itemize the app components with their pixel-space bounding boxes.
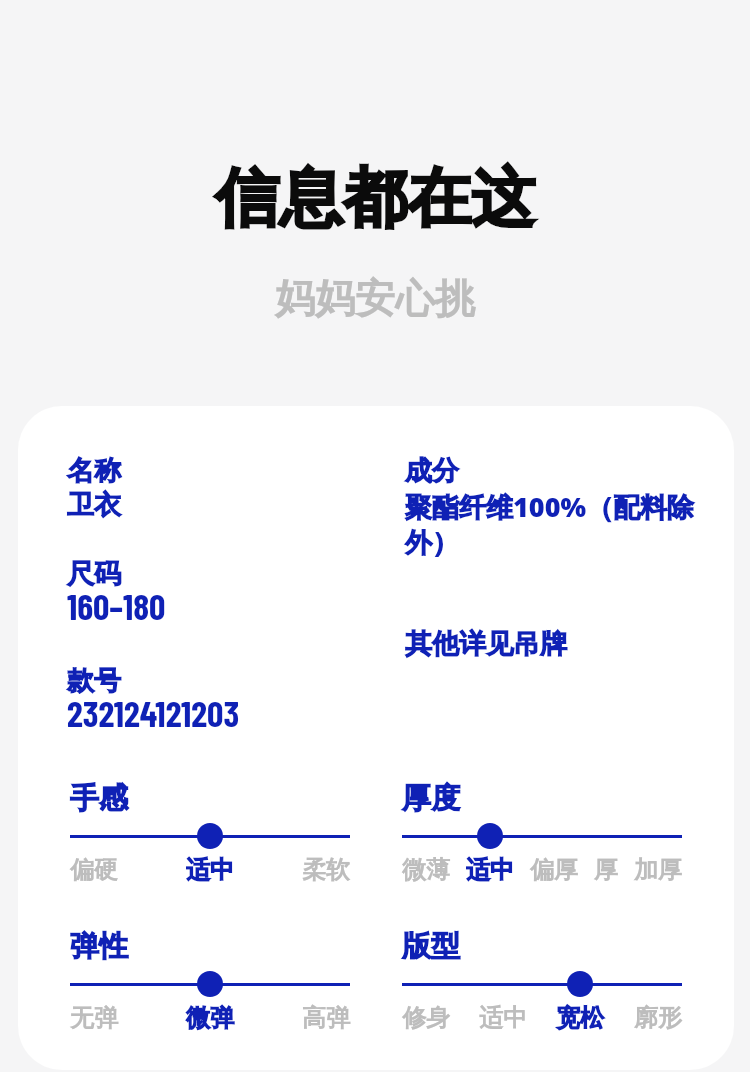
staticText: 160–180 — [67, 584, 166, 627]
staticText: 卫衣 — [67, 488, 121, 522]
staticText: 信息都在这 — [215, 158, 535, 239]
other: Slider handle — [477, 823, 503, 849]
button[interactable]: 适中 — [186, 855, 234, 885]
button[interactable]: 修身 — [402, 1003, 450, 1033]
button[interactable]: 柔软 — [302, 855, 350, 885]
button[interactable]: 微薄 — [402, 855, 450, 885]
staticText: 厚度 — [402, 780, 460, 817]
staticText: 手感 — [70, 780, 128, 817]
button[interactable]: 厚度 — [402, 780, 682, 885]
staticText: 尺码 — [67, 557, 121, 591]
other: Slider handle — [197, 971, 223, 997]
button[interactable]: 偏厚 — [530, 855, 578, 885]
button[interactable]: 版型 — [402, 928, 682, 1033]
staticText: 版型 — [402, 928, 460, 965]
staticText: 名称 — [67, 454, 121, 488]
staticText: 成分 — [405, 454, 459, 488]
button[interactable]: 偏硬 — [70, 855, 118, 885]
button[interactable]: 适中 — [479, 1003, 527, 1033]
staticText: 其他详见吊牌 — [405, 627, 567, 661]
other: Slider handle — [197, 823, 223, 849]
button[interactable]: 手感 — [70, 780, 350, 885]
other: Slider handle — [567, 971, 593, 997]
button[interactable]: 高弹 — [302, 1003, 350, 1033]
staticText: 弹性 — [70, 928, 128, 965]
button[interactable]: 宽松 — [556, 1003, 604, 1033]
button[interactable]: 廓形 — [634, 1003, 682, 1033]
button[interactable]: 适中 — [466, 855, 514, 885]
button[interactable]: 加厚 — [634, 855, 682, 885]
button[interactable]: 无弹 — [70, 1003, 118, 1033]
staticText: 妈妈安心挑 — [275, 273, 475, 323]
staticText: 232124121203 — [67, 691, 240, 734]
button[interactable]: 弹性 — [70, 928, 350, 1033]
staticText: 款号 — [67, 664, 121, 698]
button[interactable]: 微弹 — [186, 1003, 234, 1033]
staticText: 聚酯纤维100%（配料除外） — [405, 488, 705, 560]
button[interactable]: 厚 — [594, 855, 618, 885]
button[interactable]: 名称 — [18, 406, 734, 1070]
